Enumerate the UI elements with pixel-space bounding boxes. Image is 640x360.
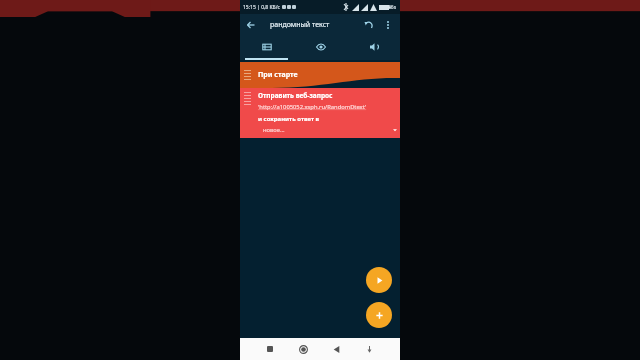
button[interactable]: Download — [361, 341, 377, 357]
button[interactable]: Sound — [347, 36, 400, 58]
staticText: рандомный текст — [270, 20, 330, 30]
button[interactable]: Back — [240, 14, 262, 36]
staticText: При старте — [258, 70, 298, 80]
button[interactable]: Undo — [359, 15, 379, 35]
staticText: 'http://a1005052.xsph.ru/RandomDtext' — [258, 103, 367, 111]
button[interactable]: Run — [366, 267, 392, 293]
button[interactable]: Отправить веб-запрос — [240, 88, 400, 138]
staticText: и сохранить ответ в — [258, 115, 320, 123]
staticText: 46s — [388, 4, 397, 11]
button[interactable]: Home — [295, 341, 311, 357]
button[interactable]: При старте — [240, 62, 400, 88]
staticText: Отправить веб-запрос — [258, 91, 333, 100]
staticText: 15:15 | 0,8 KБ/c — [243, 4, 280, 11]
button[interactable]: Recents — [262, 341, 278, 357]
button[interactable]: Add — [366, 302, 392, 328]
staticText: новое... — [263, 126, 285, 134]
button[interactable]: More options — [379, 16, 397, 34]
button[interactable]: Preview — [294, 36, 347, 58]
button[interactable]: List view — [240, 36, 294, 58]
button[interactable]: Back — [328, 341, 344, 357]
